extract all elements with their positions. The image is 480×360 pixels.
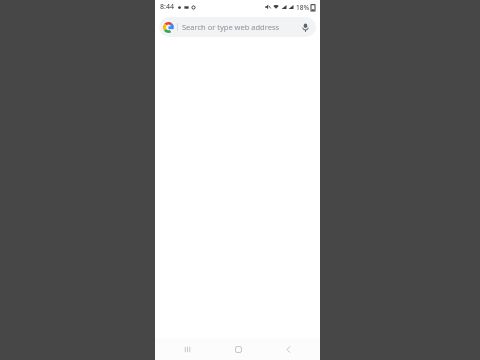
- button[interactable]: Recent apps: [169, 338, 205, 360]
- staticText: Search or type web address: [182, 22, 296, 32]
- staticText: 18%: [296, 3, 309, 12]
- button[interactable]: Voice search: [298, 20, 312, 34]
- button[interactable]: Back: [270, 338, 306, 360]
- staticText: 8:44: [160, 2, 174, 12]
- button[interactable]: Home: [220, 338, 256, 360]
- button[interactable]: Search or type web address: [159, 17, 316, 37]
